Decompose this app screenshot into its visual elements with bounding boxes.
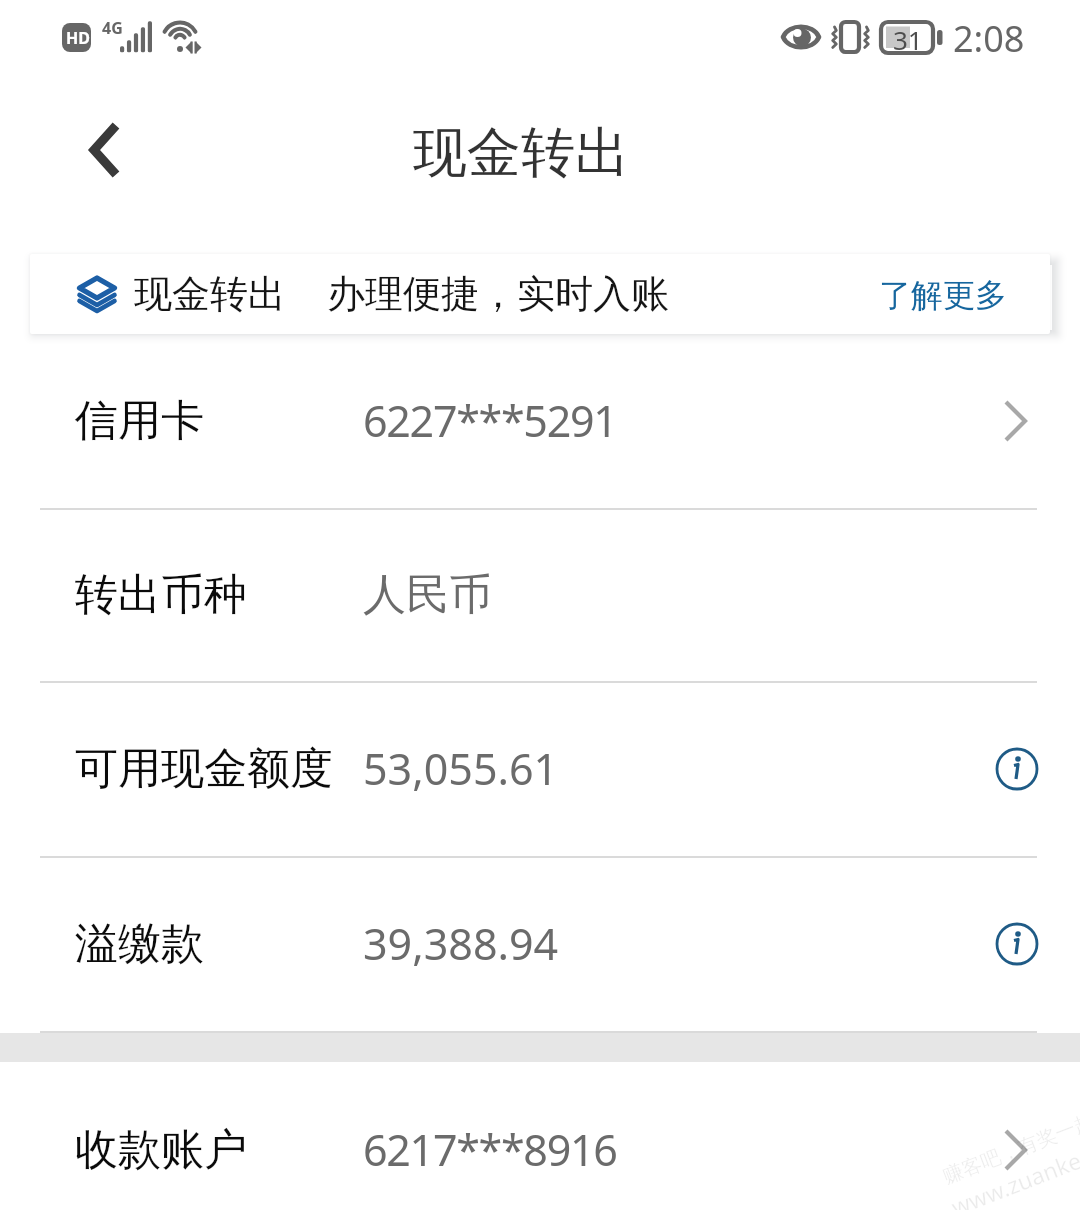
- button[interactable]: 信用卡: [0, 333, 1080, 508]
- staticText: 6227***5291: [363, 391, 617, 450]
- button[interactable]: 现金转出: [30, 254, 1050, 334]
- staticText: 6217***8916: [363, 1120, 617, 1179]
- staticText: 转出币种: [75, 568, 247, 622]
- staticText: 现金转出: [413, 119, 629, 187]
- button[interactable]: More info: [992, 919, 1042, 969]
- staticText: 信用卡: [75, 394, 204, 448]
- button[interactable]: 收款账户: [0, 1062, 1080, 1210]
- button[interactable]: 可用现金额度: [0, 681, 1080, 856]
- button[interactable]: 转出币种: [0, 508, 1080, 681]
- staticText: 赚客吧，有奖一起赚！: [939, 1094, 1080, 1189]
- staticText: 2:08: [953, 14, 1025, 63]
- staticText: HD: [66, 27, 90, 49]
- staticText: www.zuanke8.com: [946, 1120, 1080, 1210]
- button[interactable]: 了解更多: [879, 275, 1007, 315]
- staticText: 4G: [102, 17, 123, 39]
- staticText: 31: [893, 22, 923, 57]
- staticText: 人民币: [363, 568, 492, 622]
- staticText: 收款账户: [75, 1123, 247, 1177]
- staticText: 办理便捷，实时入账: [327, 270, 669, 318]
- button[interactable]: 溢缴款: [0, 856, 1080, 1031]
- staticText: 现金转出: [134, 270, 286, 318]
- button[interactable]: More info: [992, 744, 1042, 794]
- staticText: 39,388.94: [363, 914, 559, 973]
- staticText: 可用现金额度: [75, 742, 333, 796]
- staticText: 53,055.61: [363, 739, 559, 798]
- staticText: 溢缴款: [75, 917, 204, 971]
- button[interactable]: Back: [60, 110, 134, 184]
